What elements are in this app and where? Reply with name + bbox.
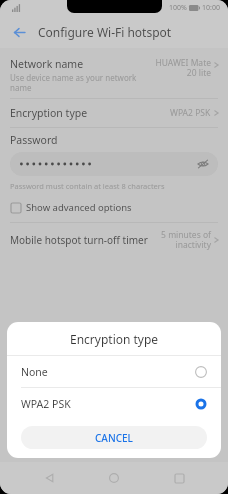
button[interactable]: Mobile hotspot turn-off timer: [0, 223, 228, 256]
staticText: WPA2 PSK: [21, 397, 71, 411]
staticText: HUAWEI Mate 20 lite: [149, 57, 211, 78]
staticText: Show advanced options: [26, 201, 132, 214]
button[interactable]: Back: [7, 20, 31, 44]
staticText: Encryption type: [70, 331, 159, 347]
button[interactable]: Home: [99, 463, 129, 493]
button[interactable]: CANCEL: [21, 426, 207, 449]
button[interactable]: Network name: [0, 54, 228, 98]
staticText: CANCEL: [95, 431, 133, 445]
staticText: Password must contain at least 8 charact…: [10, 181, 165, 191]
staticText: Network name: [10, 57, 84, 71]
staticText: 5 minutes of inactivity: [159, 229, 211, 250]
button[interactable]: WPA2 PSK: [7, 388, 221, 419]
button[interactable]: Recent apps: [164, 463, 194, 493]
staticText: Use device name as your network name: [10, 72, 143, 93]
staticText: None: [21, 365, 48, 379]
staticText: WPA2 PSK: [170, 107, 211, 119]
staticText: Configure Wi-Fi hotspot: [38, 24, 172, 40]
button[interactable]: Encryption type: [0, 99, 228, 127]
staticText: Password: [10, 133, 58, 147]
button[interactable]: Back: [35, 463, 65, 493]
staticText: 10:00: [202, 3, 220, 13]
staticText: Encryption type: [10, 106, 170, 120]
staticText: 100%: [169, 3, 187, 13]
button[interactable]: Show advanced options: [0, 199, 228, 218]
button[interactable]: Show password: [197, 158, 209, 170]
button[interactable]: Show password: [10, 152, 218, 176]
staticText: Mobile hotspot turn-off timer: [10, 233, 159, 247]
button[interactable]: None: [7, 356, 221, 387]
